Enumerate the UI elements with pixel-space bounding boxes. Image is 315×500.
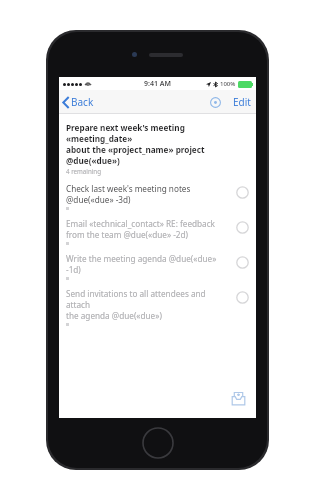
staticText: Email «technical_contact» RE: feedback f…	[66, 218, 215, 240]
button[interactable]: Complete task	[233, 183, 251, 201]
button[interactable]: Record	[207, 94, 223, 110]
staticText: Prepare next week's meeting «meeting_dat…	[66, 122, 249, 166]
button[interactable]: Edit	[230, 92, 256, 112]
staticText: Back	[71, 95, 94, 109]
button[interactable]: Complete task	[233, 218, 251, 236]
staticText: 100%	[220, 80, 236, 88]
button[interactable]: Check last week's meeting notes @due(«du…	[59, 180, 256, 215]
button[interactable]: Complete task	[233, 288, 251, 306]
staticText: Check last week's meeting notes @due(«du…	[66, 183, 191, 205]
staticText: Edit	[233, 95, 251, 109]
button[interactable]: Back	[59, 92, 100, 112]
staticText: 9:41 AM	[144, 79, 171, 89]
button[interactable]: Email «technical_contact» RE: feedback f…	[59, 215, 256, 250]
button[interactable]: Add to inbox	[226, 386, 250, 410]
staticText: Send invitations to all attendees and at…	[66, 288, 229, 321]
button[interactable]: Send invitations to all attendees and at…	[59, 285, 256, 331]
button[interactable]: Prepare next week's meeting «meeting_dat…	[59, 120, 256, 180]
button[interactable]: Complete task	[233, 253, 251, 271]
button[interactable]: Write the meeting agenda @due(«due» -1d)	[59, 250, 256, 285]
staticText: 4 remaining	[66, 167, 101, 175]
staticText: Write the meeting agenda @due(«due» -1d)	[66, 253, 229, 275]
